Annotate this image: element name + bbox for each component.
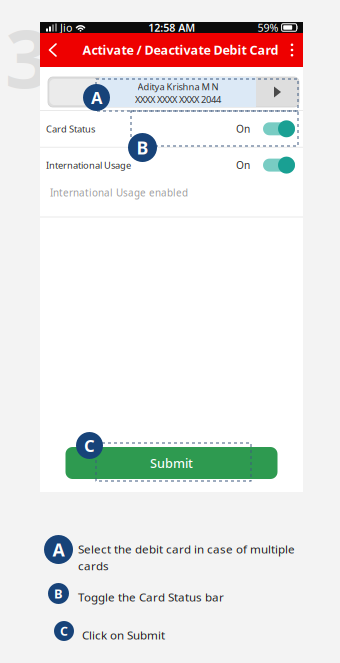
button[interactable]: Previous card — [49, 79, 103, 105]
staticText: On — [236, 158, 250, 172]
staticText: C — [60, 623, 68, 639]
button[interactable]: Next card — [256, 77, 299, 107]
staticText: 3 — [5, 2, 51, 111]
staticText: Card Status — [46, 122, 95, 135]
button[interactable]: Back — [40, 33, 66, 67]
staticText: Toggle the Card Status bar — [78, 589, 224, 605]
staticText: Click on Submit — [82, 627, 165, 643]
staticText: 12:58 AM — [148, 20, 195, 35]
staticText: B — [54, 585, 63, 602]
button[interactable]: International Usage — [40, 148, 303, 183]
staticText: On — [236, 122, 250, 136]
button[interactable]: Card Status — [40, 111, 303, 147]
staticText: International Usage — [46, 159, 131, 171]
staticText: A — [52, 537, 64, 562]
staticText: Submit — [150, 454, 193, 472]
staticText: C — [84, 434, 95, 457]
staticText: Jio — [60, 20, 72, 35]
button[interactable]: Submit — [65, 447, 277, 479]
staticText: International Usage enabled — [50, 186, 188, 199]
staticText: A — [91, 86, 102, 109]
staticText: cards — [78, 558, 109, 574]
staticText: 59% — [258, 20, 279, 35]
button[interactable]: More options — [281, 33, 303, 67]
staticText: XXXX XXXX XXXX 2044 — [135, 93, 221, 106]
staticText: Activate / Deactivate Debit Card — [82, 41, 278, 59]
staticText: B — [136, 135, 148, 160]
staticText: Aditya Krishna M N — [137, 80, 218, 93]
staticText: Select the debit card in case of multipl… — [78, 541, 295, 557]
